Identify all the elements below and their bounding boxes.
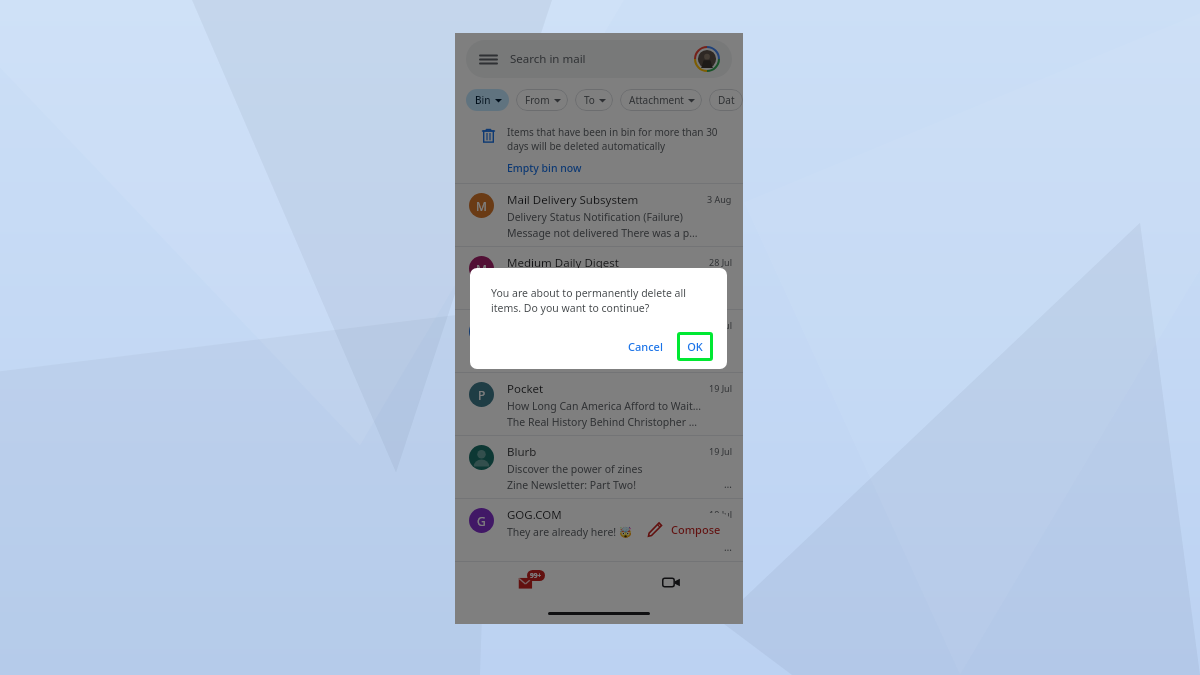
staticText: 24 Jul bbox=[709, 319, 732, 331]
staticText: Zine Newsletter: Part Two! bbox=[507, 478, 637, 492]
button[interactable]: M bbox=[455, 184, 743, 246]
staticText: How Long Can America Afford to Wait fo… bbox=[507, 399, 703, 413]
staticText: Search in mail bbox=[510, 51, 586, 67]
staticText: M bbox=[476, 261, 487, 277]
button[interactable]: M bbox=[455, 247, 743, 309]
staticText: You are about to permanently delete all … bbox=[491, 286, 713, 315]
staticText: Bin bbox=[475, 93, 491, 107]
staticText: Date bbox=[718, 93, 736, 107]
button[interactable]: Bin bbox=[466, 89, 509, 111]
button[interactable]: From bbox=[516, 89, 568, 111]
button[interactable]: Cancel bbox=[620, 333, 671, 360]
staticText: GOG.COM bbox=[507, 507, 562, 523]
button[interactable]: Empty bin now bbox=[507, 161, 582, 175]
staticText: Read more on Medium today… bbox=[507, 289, 659, 303]
button[interactable]: Open navigation menu bbox=[478, 49, 498, 69]
button[interactable]: Blurb bbox=[455, 436, 743, 498]
button[interactable]: Attachment bbox=[620, 89, 702, 111]
staticText: Items that have been in bin for more tha… bbox=[507, 125, 731, 153]
staticText: From bbox=[525, 93, 550, 107]
staticText: 99+ bbox=[530, 571, 542, 580]
button[interactable]: P bbox=[455, 373, 743, 435]
staticText: Message not delivered There was a prob… bbox=[507, 226, 701, 240]
button[interactable]: Open navigation menu bbox=[466, 40, 732, 78]
staticText: G bbox=[477, 513, 486, 529]
staticText: 19 Jul bbox=[709, 445, 732, 457]
button[interactable]: Account bbox=[694, 46, 720, 72]
staticText: 19 Jul bbox=[709, 382, 732, 394]
staticText: … bbox=[724, 477, 732, 491]
staticText: They are already here! 🤯 bbox=[507, 525, 632, 539]
button[interactable]: OK bbox=[680, 335, 710, 358]
staticText: OK bbox=[687, 339, 703, 354]
staticText: 19 Jul bbox=[709, 508, 732, 520]
staticText: Empty bin now bbox=[507, 161, 582, 175]
button[interactable]: Mail bbox=[455, 562, 599, 602]
staticText: P bbox=[478, 387, 486, 403]
staticText: M bbox=[476, 198, 487, 214]
staticText: … bbox=[724, 540, 732, 554]
staticText: 28 Jul bbox=[709, 256, 732, 268]
staticText: Delivery Status Notification (Failure) bbox=[507, 210, 683, 224]
button[interactable]: To bbox=[575, 89, 613, 111]
staticText: Cancel bbox=[628, 339, 663, 354]
button[interactable]: Compose bbox=[633, 513, 735, 546]
staticText: Compose bbox=[671, 522, 721, 537]
button[interactable]: Meet bbox=[599, 562, 743, 602]
staticText: Pocket bbox=[507, 381, 544, 397]
staticText: The Real History Behind Christopher Nol… bbox=[507, 415, 703, 429]
button[interactable]: S bbox=[455, 310, 743, 372]
staticText: Blurb bbox=[507, 444, 537, 460]
staticText: Mail Delivery Subsystem bbox=[507, 192, 639, 208]
button[interactable]: Date bbox=[709, 89, 743, 111]
staticText: Attachment bbox=[629, 93, 684, 107]
staticText: 3 Aug bbox=[707, 193, 732, 205]
staticText: Medium Daily Digest bbox=[507, 255, 620, 271]
staticText: To bbox=[584, 93, 595, 107]
button[interactable]: G bbox=[455, 499, 743, 561]
staticText: Discover the power of zines bbox=[507, 462, 643, 476]
